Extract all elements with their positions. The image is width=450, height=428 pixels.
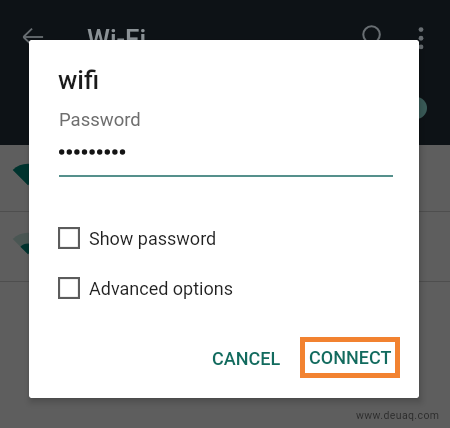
staticText: Show password	[89, 228, 217, 249]
staticText: CONNECT	[309, 347, 392, 368]
button[interactable]: Search	[361, 24, 385, 48]
button[interactable]: Advanced options	[58, 277, 233, 299]
button[interactable]: CONNECT	[300, 337, 400, 378]
staticText: Advanced options	[89, 278, 233, 299]
button[interactable]: Wi-Fi on/off	[405, 97, 427, 119]
staticText: CANCEL	[212, 348, 281, 369]
staticText: Wi-Fi	[87, 24, 147, 54]
staticText: Password	[59, 109, 141, 131]
button[interactable]: Back	[21, 25, 45, 49]
button[interactable]: CANCEL	[200, 338, 293, 379]
staticText: wifi	[58, 65, 100, 95]
button[interactable]: Show password	[58, 227, 217, 249]
staticText: www.deuaq.com	[356, 409, 440, 421]
button[interactable]	[0, 282, 450, 428]
button[interactable]: More options	[409, 26, 433, 50]
button[interactable]	[0, 145, 450, 211]
button[interactable]	[0, 212, 450, 281]
